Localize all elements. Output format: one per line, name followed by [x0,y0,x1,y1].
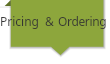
staticText: Pricing [0,13,39,29]
button[interactable] [0,0,110,64]
staticText: Ordering [58,13,107,29]
staticText: & [45,13,54,29]
